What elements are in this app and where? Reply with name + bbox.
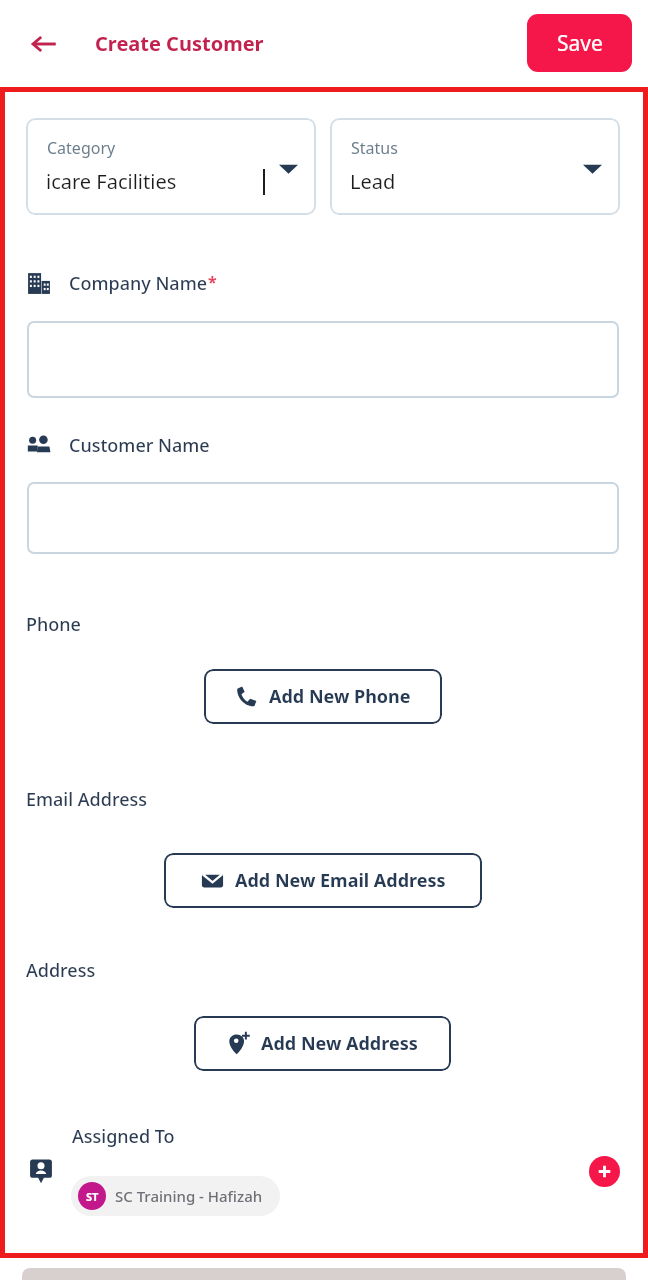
staticText: Phone xyxy=(26,612,81,637)
staticText: * xyxy=(208,271,217,293)
staticText: Email Address xyxy=(26,787,147,812)
staticText: SC Training - Hafizah xyxy=(115,1186,263,1206)
button[interactable]: Save xyxy=(527,14,632,72)
staticText: Add New Address xyxy=(261,1031,418,1056)
staticText: Add New Email Address xyxy=(235,868,446,893)
staticText: Add New Phone xyxy=(269,684,411,709)
button[interactable]: Add New Phone xyxy=(204,669,442,724)
staticText: ST xyxy=(86,1189,99,1204)
staticText: Assigned To xyxy=(72,1124,175,1149)
staticText: Company Name xyxy=(69,271,208,296)
button[interactable]: Customer Name input xyxy=(27,482,619,554)
button[interactable]: ST xyxy=(71,1176,280,1216)
staticText: Category xyxy=(47,137,116,159)
button[interactable]: Add assignee xyxy=(589,1156,620,1187)
button[interactable]: Add New Address xyxy=(194,1016,451,1071)
staticText: Create Customer xyxy=(95,30,264,57)
staticText: Customer Name xyxy=(69,433,210,458)
button[interactable]: Back xyxy=(22,22,66,66)
staticText: icare Facilities xyxy=(46,168,177,195)
staticText: Address xyxy=(26,958,96,983)
staticText: Lead xyxy=(350,168,396,195)
button[interactable]: Category xyxy=(26,118,316,215)
button[interactable]: Company Name input xyxy=(27,321,619,398)
button[interactable]: Status xyxy=(330,118,620,215)
staticText: Status xyxy=(351,137,398,159)
staticText: Save xyxy=(557,29,603,58)
button[interactable]: Add New Email Address xyxy=(164,853,482,908)
